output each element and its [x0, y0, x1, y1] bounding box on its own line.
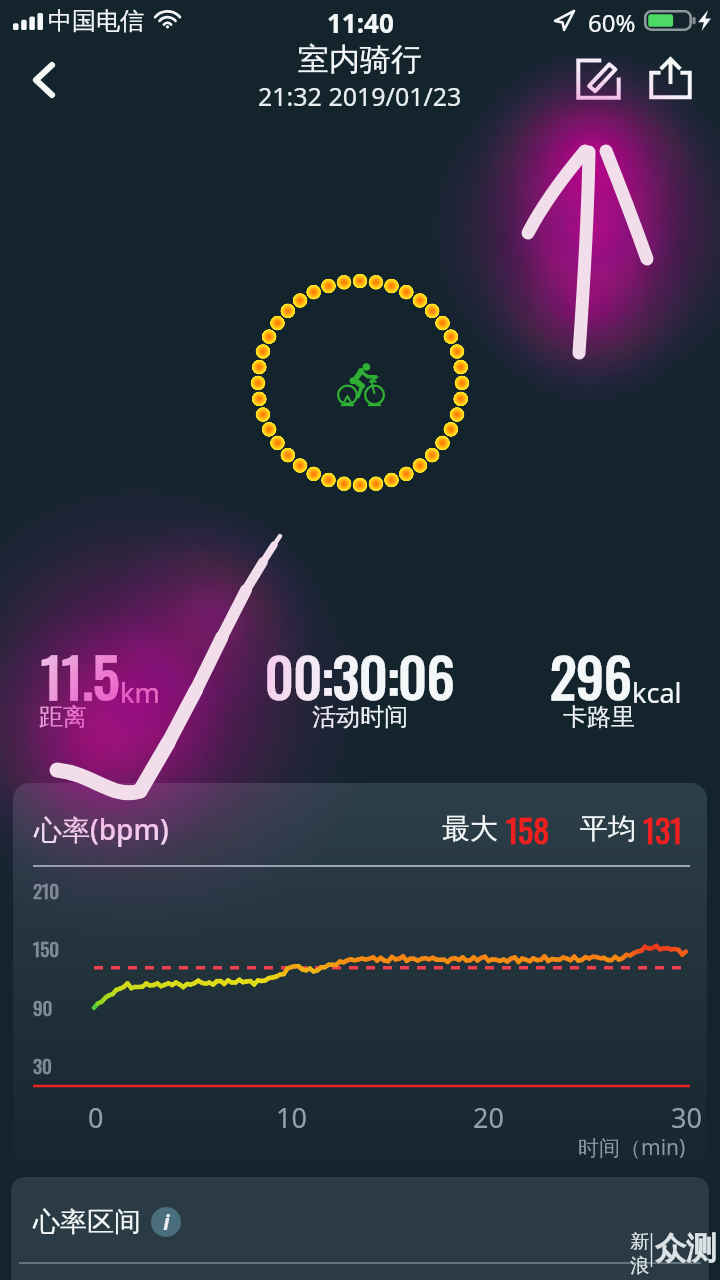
staticText: 距离	[39, 702, 87, 732]
staticText: 10	[276, 1099, 307, 1136]
button[interactable]: Share	[641, 48, 699, 106]
staticText: km	[120, 674, 160, 711]
staticText: 心率(bpm)	[34, 810, 169, 848]
staticText: 0	[88, 1099, 104, 1136]
staticText: 浪	[630, 1254, 649, 1278]
staticText: 平均	[580, 811, 636, 846]
button[interactable]: 心率(bpm)	[13, 783, 707, 1166]
staticText: 20	[473, 1099, 504, 1136]
staticText: 131	[643, 806, 683, 853]
staticText: 室内骑行	[298, 40, 422, 79]
staticText: 210	[33, 876, 60, 904]
staticText: 11.5	[41, 634, 120, 716]
staticText: 最大	[442, 811, 498, 846]
staticText: 90	[33, 993, 53, 1021]
staticText: 时间（min)	[578, 1133, 686, 1162]
button[interactable]: Back	[12, 48, 76, 112]
staticText: 中国电信	[48, 6, 144, 36]
staticText: 卡路里	[563, 702, 635, 732]
staticText: 21:32 2019/01/23	[258, 79, 462, 113]
staticText: 心率区间	[33, 1205, 141, 1239]
staticText: 158	[506, 806, 550, 853]
staticText: 60%	[588, 6, 636, 39]
staticText: 296	[550, 634, 632, 716]
staticText: 30	[671, 1099, 702, 1136]
staticText: 新	[630, 1230, 649, 1254]
staticText: 11:40	[327, 5, 394, 40]
button[interactable]: Edit	[569, 48, 627, 106]
staticText: 00:30:06	[265, 634, 455, 716]
button[interactable]: 心率区间	[11, 1177, 709, 1280]
staticText: 150	[33, 934, 60, 962]
staticText: 活动时间	[312, 702, 408, 732]
staticText: 30	[33, 1051, 52, 1079]
staticText: kcal	[632, 674, 682, 711]
staticText: 众测	[655, 1229, 717, 1268]
staticText: i	[163, 1208, 170, 1237]
